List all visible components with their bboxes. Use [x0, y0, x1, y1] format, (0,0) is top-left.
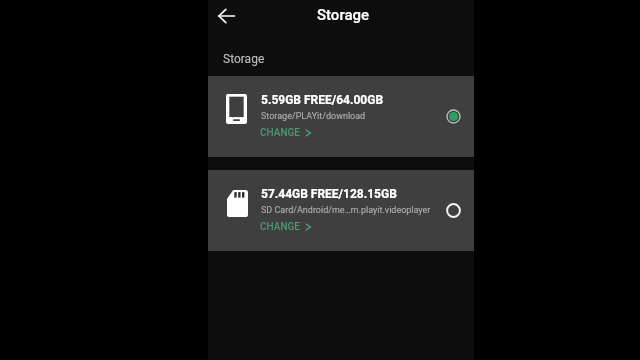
button[interactable]: 5.59GB FREE/64.00GB [208, 76, 474, 157]
button[interactable]: Select storage [446, 203, 461, 218]
button[interactable]: Selected storage [446, 109, 461, 124]
staticText: Storage/PLAYit/download [261, 111, 366, 122]
button[interactable]: CHANGE [257, 124, 319, 140]
button[interactable]: Back [212, 2, 240, 30]
staticText: 5.59GB FREE/64.00GB [261, 93, 384, 107]
staticText: CHANGE [260, 221, 300, 233]
button[interactable]: 57.44GB FREE/128.15GB [208, 170, 474, 251]
staticText: Storage [317, 6, 370, 24]
staticText: Storage [223, 52, 265, 66]
staticText: 57.44GB FREE/128.15GB [261, 187, 397, 201]
staticText: SD Card/Android/me…m.playit.videoplayer [261, 205, 431, 216]
staticText: CHANGE [260, 127, 300, 139]
button[interactable]: CHANGE [257, 218, 319, 234]
